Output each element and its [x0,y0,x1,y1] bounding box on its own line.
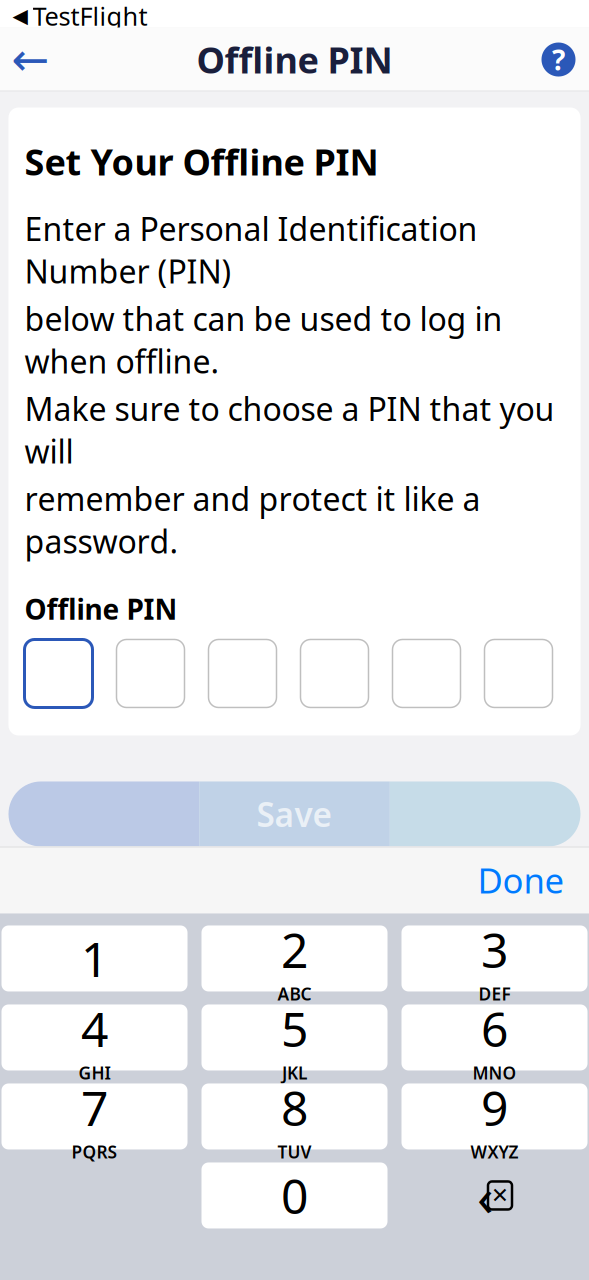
staticText: Offline PIN [24,590,177,627]
staticText: 8 [281,1076,308,1139]
staticText: 7 [81,1076,108,1139]
staticText: below that can be used to log in when of… [24,297,502,382]
staticText: 2 [281,918,308,981]
staticText: 6 [481,997,508,1060]
staticText: 5 [281,997,308,1060]
staticText: remember and protect it like a password. [24,477,480,562]
button[interactable]: PIN digit [116,639,184,707]
staticText: Set Your Offline PIN [24,137,378,185]
staticText: DEF [478,982,510,1005]
staticText: 9 [481,1076,508,1139]
staticText: ? [552,41,565,78]
staticText: Offline PIN [196,36,392,83]
staticText: Done [477,857,564,903]
staticText: Enter a Personal Identification Number (… [24,207,477,292]
button[interactable]: 1 [1,925,187,991]
staticText: 4 [81,997,108,1060]
staticText: MNO [472,1061,516,1084]
button[interactable]: 7 [1,1083,187,1149]
button[interactable]: 0 [201,1162,387,1228]
button[interactable]: PIN digit [392,639,460,707]
staticText: 3 [481,918,508,981]
button[interactable]: PIN digit [484,639,552,707]
staticText: PQRS [71,1140,117,1163]
button[interactable]: PIN digit [24,639,92,707]
button[interactable]: PIN digit [300,639,368,707]
button[interactable]: Delete [401,1162,587,1228]
staticText: ‹ [477,1160,494,1231]
staticText: ← [11,34,49,85]
staticText: GHI [78,1061,110,1084]
staticText: ✕ [491,1183,509,1208]
staticText: TestFlight [32,0,147,33]
staticText: ABC [277,982,311,1005]
staticText: Save [256,792,332,836]
staticText: JKL [282,1061,307,1084]
button[interactable]: 4 [1,1004,187,1070]
staticText: WXYZ [470,1140,518,1163]
staticText: ◀ [12,5,27,27]
staticText: TUV [277,1140,311,1163]
staticText: Make sure to choose a PIN that you will [24,387,554,472]
button[interactable]: Done [459,847,582,913]
button[interactable]: Help [526,31,589,87]
button[interactable]: 6 [401,1004,587,1070]
button[interactable]: 9 [401,1083,587,1149]
button[interactable]: Save [8,781,580,846]
staticText: 1 [81,927,108,990]
button[interactable]: Back [0,31,62,87]
button[interactable]: 8 [201,1083,387,1149]
button[interactable]: PIN digit [208,639,276,707]
button[interactable]: 5 [201,1004,387,1070]
button[interactable]: 2 [201,925,387,991]
button[interactable]: 3 [401,925,587,991]
staticText: 0 [281,1164,308,1227]
